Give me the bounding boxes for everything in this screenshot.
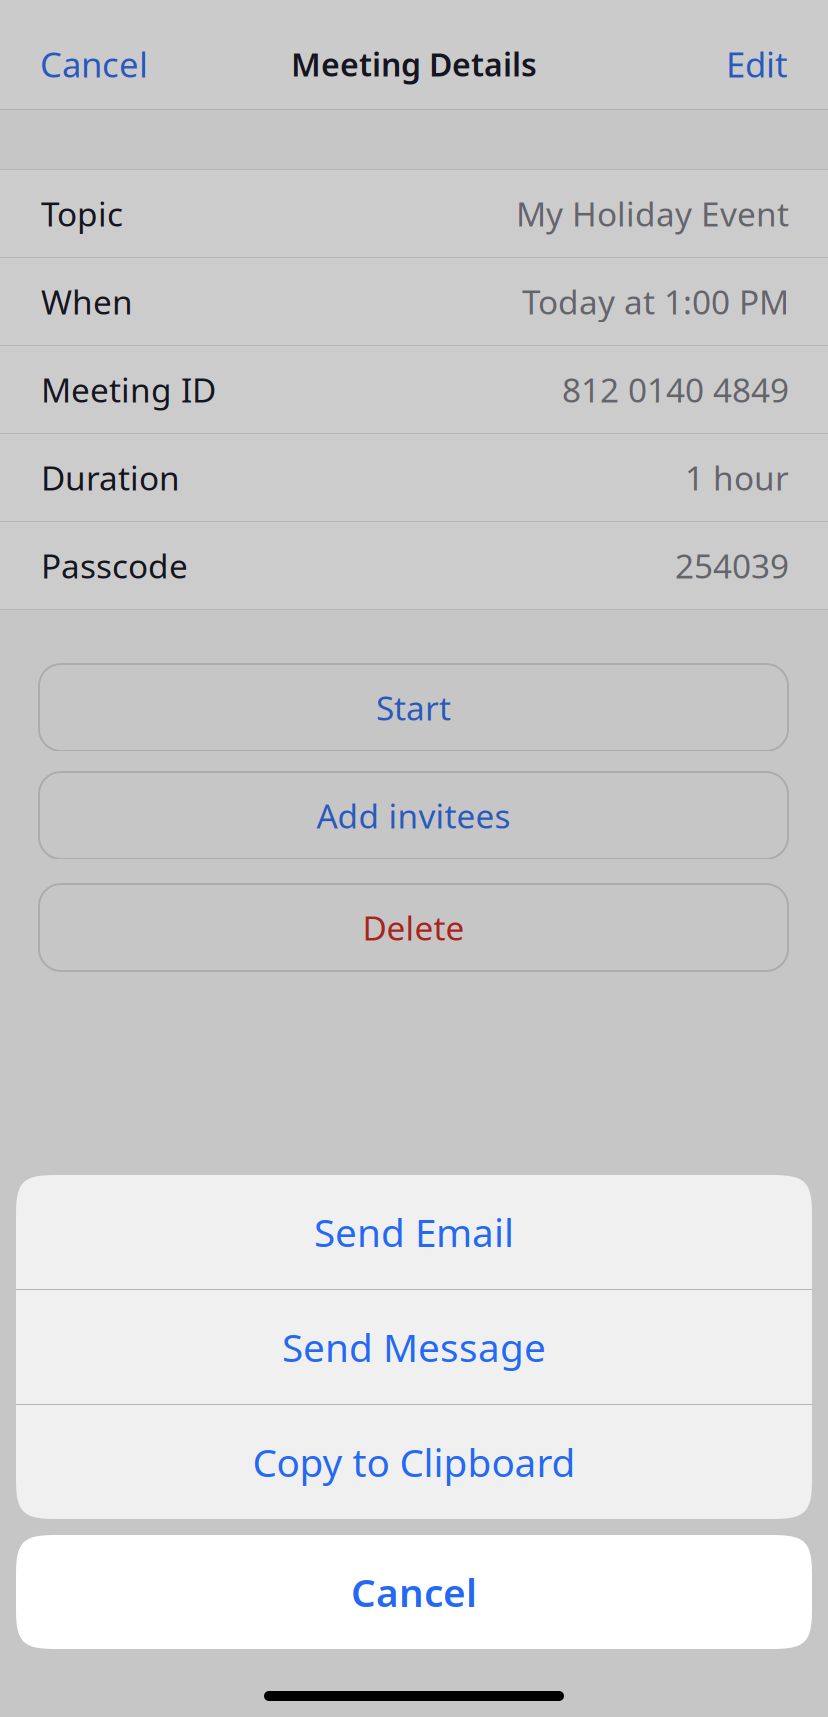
staticText: Send Email (314, 1206, 514, 1258)
button[interactable]: Edit (726, 27, 788, 101)
staticText: Cancel (351, 1566, 477, 1618)
staticText: 254039 (675, 543, 789, 588)
staticText: Send Message (282, 1321, 546, 1373)
staticText: Duration (41, 455, 180, 500)
staticText: Edit (726, 41, 788, 87)
staticText: Topic (41, 191, 123, 236)
staticText: My Holiday Event (516, 191, 789, 236)
button[interactable]: Cancel (16, 1535, 812, 1649)
button[interactable]: Add invitees (39, 772, 788, 859)
staticText: 1 hour (685, 455, 789, 500)
button[interactable]: Copy to Clipboard (16, 1405, 812, 1519)
staticText: Passcode (41, 543, 188, 588)
staticText: Copy to Clipboard (252, 1436, 575, 1488)
button[interactable]: Delete (39, 884, 788, 971)
staticText: When (41, 279, 133, 324)
button[interactable]: Send Email (16, 1175, 812, 1289)
button[interactable]: Cancel (40, 27, 148, 101)
staticText: Meeting ID (41, 367, 216, 412)
staticText: Today at 1:00 PM (522, 279, 789, 324)
staticText: Meeting Details (291, 43, 537, 85)
staticText: Cancel (40, 41, 148, 87)
staticText: 812 0140 4849 (562, 367, 789, 412)
staticText: Add invitees (316, 793, 510, 838)
staticText: Delete (362, 905, 464, 950)
button[interactable]: Send Message (16, 1290, 812, 1404)
staticText: Start (376, 685, 451, 730)
button[interactable]: Start (39, 664, 788, 751)
